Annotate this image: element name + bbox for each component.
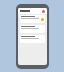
button[interactable] <box>20 35 45 43</box>
other: Notifications <box>42 10 45 13</box>
button[interactable] <box>20 15 45 23</box>
button[interactable] <box>20 25 45 33</box>
